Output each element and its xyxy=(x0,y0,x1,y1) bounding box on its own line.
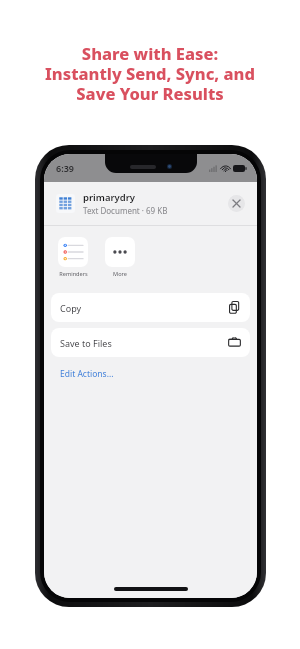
staticText: Reminders xyxy=(59,270,88,278)
staticText: primarydry xyxy=(83,191,136,204)
staticText: Text Document · 69 KB xyxy=(83,205,168,216)
button[interactable]: Close xyxy=(228,195,245,212)
button[interactable]: Copy xyxy=(51,293,250,322)
button[interactable]: Reminders xyxy=(56,235,90,280)
staticText: Save to Files xyxy=(60,337,228,349)
button[interactable]: Edit Actions... xyxy=(58,366,116,382)
button[interactable]: More xyxy=(103,235,137,280)
staticText: Edit Actions... xyxy=(60,368,114,380)
button[interactable]: primarydry xyxy=(44,182,257,225)
staticText: 6:39 xyxy=(56,162,74,174)
staticText: Share with Ease: Instantly Send, Sync, a… xyxy=(45,42,255,105)
button[interactable]: Save to Files xyxy=(51,328,250,357)
staticText: More xyxy=(113,270,127,278)
staticText: Copy xyxy=(60,302,228,314)
